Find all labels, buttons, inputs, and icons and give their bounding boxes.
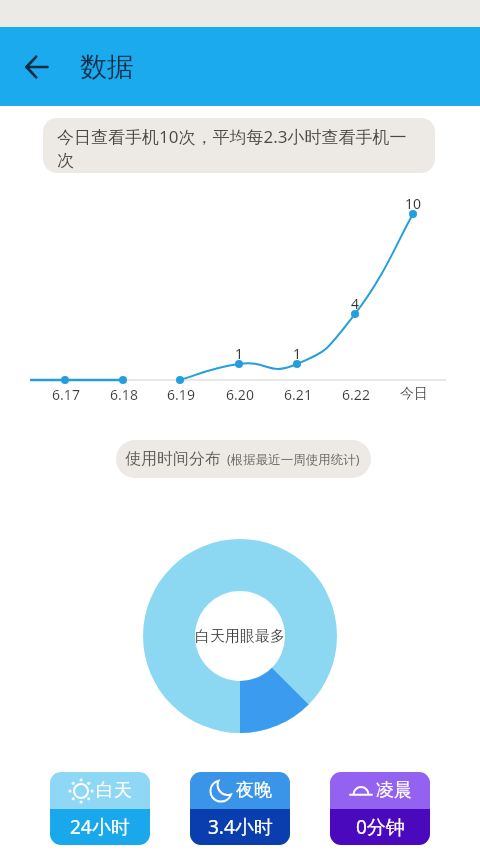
staticText: 白天用眼最多 (195, 627, 285, 646)
staticText: 24小时 (70, 814, 130, 840)
staticText: 白天 (96, 779, 132, 802)
button[interactable]: 白天 (50, 772, 150, 845)
staticText: 夜晚 (236, 779, 272, 802)
staticText: 6.21 (268, 385, 328, 404)
button[interactable]: 使用时间分布 (116, 440, 371, 478)
staticText: 0分钟 (356, 814, 405, 840)
staticText: 3.4小时 (208, 814, 273, 840)
staticText: 1 (267, 344, 327, 363)
staticText: 数据 (80, 50, 134, 84)
staticText: 凌晨 (376, 779, 412, 802)
staticText: 今日查看手机10次，平均每2.3小时查看手机一次 (57, 125, 415, 171)
staticText: 4 (325, 294, 385, 313)
button[interactable]: 凌晨 (330, 772, 430, 845)
staticText: 10 (383, 194, 443, 213)
staticText: 6.19 (151, 385, 211, 404)
button[interactable]: Back (13, 43, 61, 91)
staticText: 6.17 (36, 385, 96, 404)
button[interactable]: 夜晚 (190, 772, 290, 845)
staticText: 6.20 (210, 385, 270, 404)
staticText: (根据最近一周使用统计) (227, 451, 360, 468)
staticText: 6.22 (326, 385, 386, 404)
staticText: 6.18 (94, 385, 154, 404)
staticText: 1 (209, 344, 269, 363)
staticText: 使用时间分布 (125, 449, 221, 469)
staticText: 今日 (384, 385, 444, 403)
